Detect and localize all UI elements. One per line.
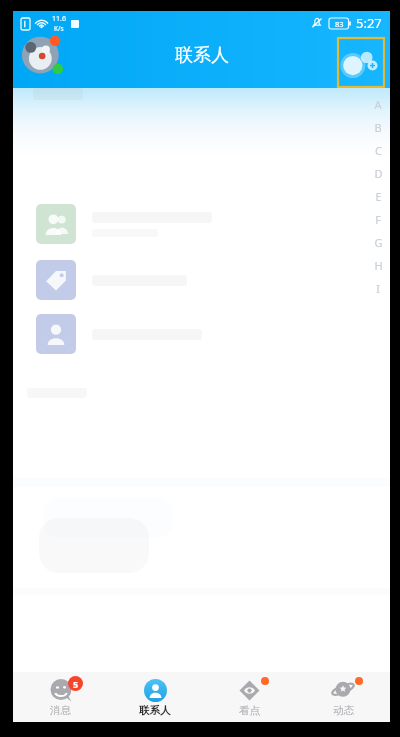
button[interactable]: E bbox=[371, 185, 385, 208]
staticText: 消息 bbox=[50, 704, 71, 717]
staticText: 5:27 bbox=[356, 14, 382, 32]
button[interactable]: Profile bbox=[21, 33, 67, 79]
button[interactable]: G bbox=[371, 231, 385, 254]
button[interactable]: I bbox=[371, 277, 385, 300]
button[interactable]: Add friend bbox=[337, 37, 385, 88]
staticText: F bbox=[375, 212, 381, 227]
staticText: 动态 bbox=[333, 704, 354, 717]
staticText: 联系人 bbox=[175, 44, 229, 67]
button[interactable]: D bbox=[371, 162, 385, 185]
staticText: 看点 bbox=[239, 704, 260, 717]
button[interactable]: 联系人 bbox=[108, 672, 202, 722]
staticText: D bbox=[374, 166, 383, 181]
button[interactable]: H bbox=[371, 254, 385, 277]
staticText: 83 bbox=[335, 19, 344, 29]
staticText: I bbox=[376, 281, 380, 296]
button[interactable]: C bbox=[371, 139, 385, 162]
staticText: 联系人 bbox=[139, 704, 171, 717]
button[interactable]: 5 bbox=[13, 672, 108, 722]
staticText: 5 bbox=[73, 678, 79, 690]
button[interactable] bbox=[36, 202, 319, 246]
button[interactable]: 看点 bbox=[202, 672, 296, 722]
staticText: K/s bbox=[54, 24, 64, 33]
button[interactable]: B bbox=[371, 116, 385, 139]
staticText: H bbox=[374, 258, 383, 273]
staticText: C bbox=[375, 143, 382, 158]
staticText: E bbox=[375, 189, 382, 204]
staticText: A bbox=[374, 97, 382, 112]
button[interactable] bbox=[36, 258, 319, 302]
button[interactable]: F bbox=[371, 208, 385, 231]
button[interactable]: 动态 bbox=[296, 672, 390, 722]
staticText: B bbox=[374, 120, 382, 135]
button[interactable] bbox=[36, 312, 319, 356]
button[interactable]: A bbox=[371, 93, 385, 116]
staticText: G bbox=[374, 235, 383, 250]
staticText: 11.6 bbox=[52, 14, 66, 24]
